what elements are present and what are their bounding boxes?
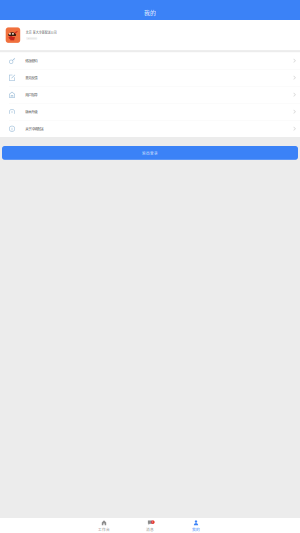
button[interactable]: 退出登录 [2,146,298,160]
button[interactable]: 北京 某大冷链配送公司 [0,20,300,50]
staticText: 用户指导 [25,92,37,97]
button[interactable]: 0 [127,517,173,533]
staticText: 我的 [192,527,200,532]
staticText: 版本升级 [25,109,37,114]
button[interactable]: 意见反馈 [0,69,300,86]
staticText: 工作台 [98,527,110,532]
button[interactable]: 我的 [173,517,219,533]
staticText: 消息 [146,527,154,532]
staticText: 13800000000 [26,37,37,40]
button[interactable]: 用户指导 [0,86,300,103]
staticText: 0 [152,520,154,524]
staticText: 关于冷链配送 [25,126,43,131]
staticText: 退出登录 [142,150,158,155]
staticText: 北京 某大冷链配送公司 [26,30,57,35]
staticText: 修改密码 [25,58,37,63]
staticText: 意见反馈 [25,75,37,80]
staticText: 我的 [144,8,156,17]
button[interactable]: 版本升级 [0,103,300,120]
button[interactable]: 关于冷链配送 [0,120,300,137]
button[interactable]: 工作台 [81,517,127,533]
button[interactable]: 修改密码 [0,52,300,69]
